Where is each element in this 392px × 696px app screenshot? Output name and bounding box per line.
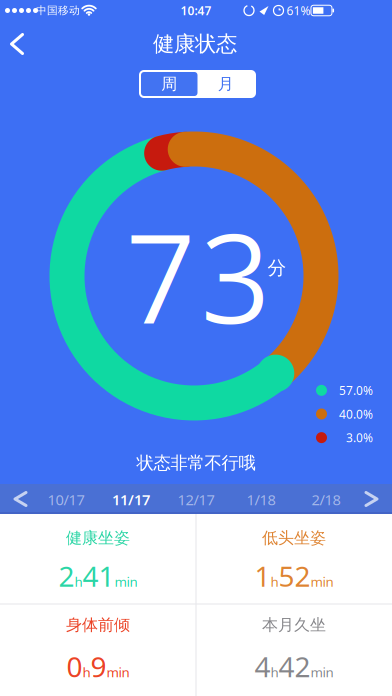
staticText: 中国移动 [36, 4, 80, 17]
staticText: 40.0% [339, 406, 373, 422]
staticText: 10/17 [47, 490, 84, 509]
button[interactable]: 10/17 [41, 484, 90, 515]
button[interactable] [7, 484, 34, 513]
button[interactable]: 月 [197, 72, 254, 96]
staticText: 2h41min [58, 557, 137, 595]
button[interactable]: 11/17 [106, 484, 156, 515]
staticText: 健康状态 [153, 31, 237, 57]
staticText: 低头坐姿 [262, 528, 326, 548]
staticText: 2/18 [311, 490, 340, 509]
staticText: 57.0% [339, 382, 373, 398]
staticText: 健康坐姿 [66, 528, 130, 548]
button[interactable]: 12/17 [171, 484, 220, 515]
button[interactable] [0, 22, 34, 65]
staticText: 本月久坐 [262, 615, 326, 635]
staticText: 1h52min [254, 557, 333, 595]
button[interactable]: 1/18 [240, 484, 281, 515]
button[interactable]: 周 [141, 72, 197, 96]
button[interactable]: 2/18 [305, 484, 346, 515]
staticText: 10:47 [180, 2, 211, 18]
staticText: 11/17 [112, 490, 150, 509]
button[interactable] [358, 484, 385, 513]
staticText: 月 [218, 74, 234, 94]
staticText: 3.0% [346, 430, 373, 446]
staticText: 0h9min [66, 648, 129, 685]
staticText: 12/17 [177, 490, 214, 509]
staticText: 61% [286, 2, 310, 18]
staticText: 1/18 [246, 490, 275, 509]
staticText: 4h42min [254, 648, 333, 685]
staticText: 身体前倾 [66, 615, 130, 635]
staticText: 73 [125, 192, 270, 360]
staticText: 状态非常不行哦 [136, 452, 255, 474]
staticText: 周 [161, 74, 177, 94]
staticText: 分 [267, 256, 286, 279]
